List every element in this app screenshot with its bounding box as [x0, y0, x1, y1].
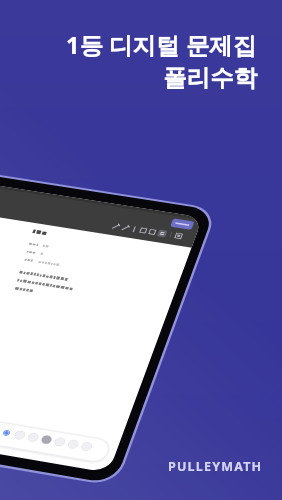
staticText: 1등 디지털 문제집: [66, 29, 257, 61]
staticText: 폴리수학: [163, 63, 257, 93]
staticText: PULLEYMATH: [168, 458, 263, 475]
